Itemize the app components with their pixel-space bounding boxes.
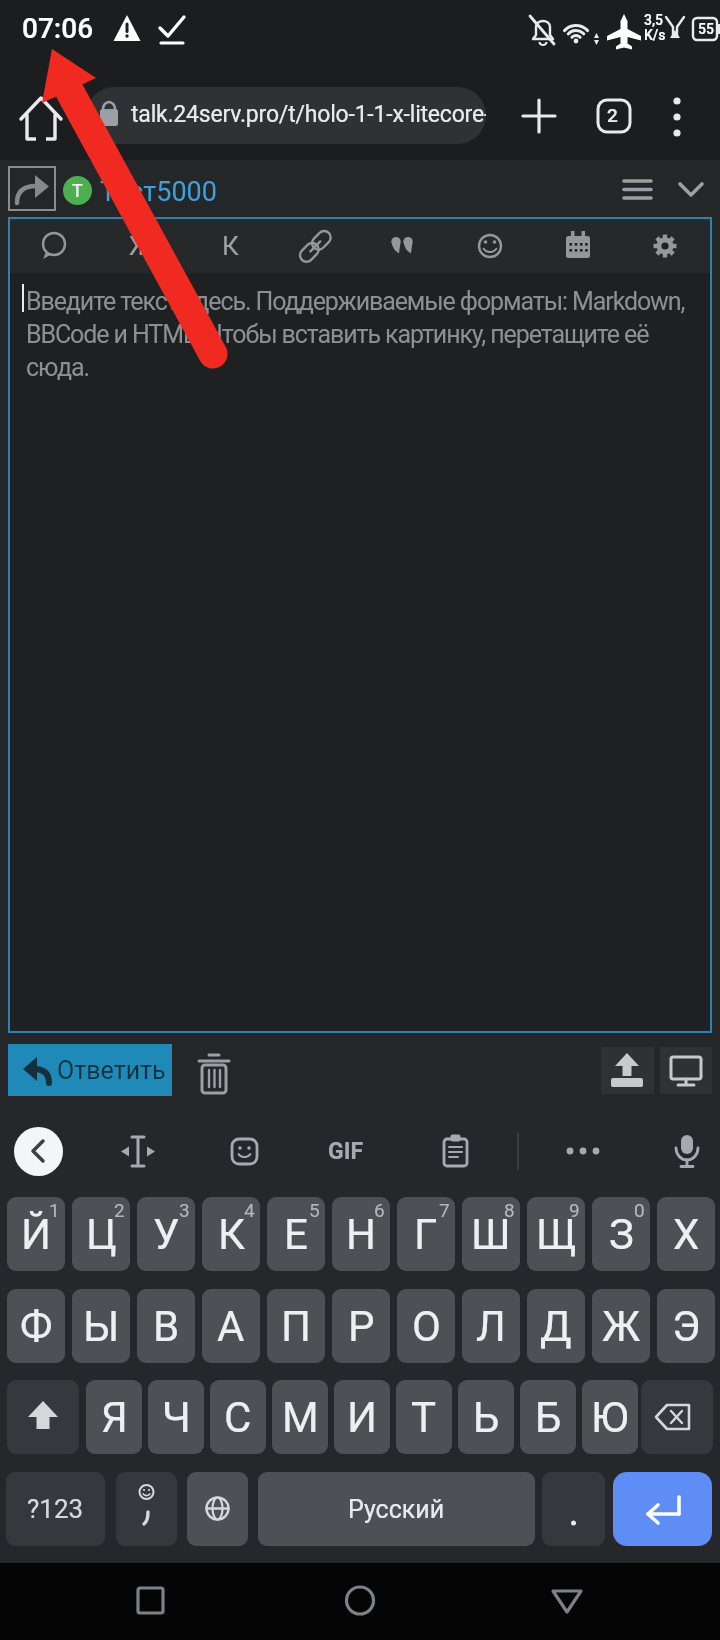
- button[interactable]: П: [267, 1289, 325, 1363]
- button[interactable]: Ш: [462, 1197, 520, 1271]
- button[interactable]: [339, 1580, 381, 1622]
- staticText: О: [412, 1302, 441, 1351]
- button[interactable]: [660, 1047, 712, 1094]
- staticText: Т: [411, 1393, 437, 1442]
- button[interactable]: [29, 222, 77, 270]
- button[interactable]: [379, 222, 427, 270]
- staticText: Ф: [20, 1302, 53, 1351]
- button[interactable]: Ь: [458, 1380, 514, 1454]
- button[interactable]: [96, 172, 216, 208]
- button[interactable]: [663, 1127, 711, 1175]
- button[interactable]: [601, 1047, 654, 1094]
- button[interactable]: Ы: [72, 1289, 130, 1363]
- button[interactable]: Г: [397, 1197, 455, 1271]
- button[interactable]: Б: [520, 1380, 576, 1454]
- staticText: Введите текст здесь. Поддерживаемые форм…: [26, 287, 685, 316]
- staticText: Ш: [471, 1210, 511, 1259]
- button[interactable]: [590, 92, 638, 140]
- button[interactable]: [542, 1472, 605, 1546]
- staticText: 55: [698, 21, 714, 37]
- staticText: Щ: [536, 1210, 577, 1259]
- button[interactable]: [196, 1052, 236, 1096]
- button[interactable]: С: [210, 1380, 266, 1454]
- button[interactable]: Щ: [527, 1197, 585, 1271]
- button[interactable]: [116, 222, 164, 270]
- button[interactable]: Д: [527, 1289, 585, 1363]
- staticText: 9: [569, 1199, 580, 1221]
- button[interactable]: [616, 172, 660, 208]
- button[interactable]: [220, 1127, 268, 1175]
- button[interactable]: А: [202, 1289, 260, 1363]
- button[interactable]: З: [592, 1197, 650, 1271]
- staticText: Х: [673, 1210, 700, 1259]
- button[interactable]: Я: [86, 1380, 142, 1454]
- button[interactable]: [559, 1127, 607, 1175]
- button[interactable]: [325, 1127, 373, 1175]
- staticText: Й: [21, 1210, 51, 1259]
- staticText: 2: [607, 104, 618, 126]
- button[interactable]: [114, 1127, 162, 1175]
- button[interactable]: Ф: [7, 1289, 65, 1363]
- button[interactable]: [546, 1580, 588, 1622]
- button[interactable]: [10, 274, 710, 1030]
- staticText: 8: [504, 1199, 515, 1221]
- button[interactable]: Э: [657, 1289, 715, 1363]
- button[interactable]: [641, 222, 689, 270]
- button[interactable]: Е: [267, 1197, 325, 1271]
- button[interactable]: Ч: [148, 1380, 204, 1454]
- staticText: В: [153, 1302, 180, 1351]
- button[interactable]: Т: [396, 1380, 452, 1454]
- staticText: Р: [348, 1302, 375, 1351]
- button[interactable]: [656, 92, 700, 140]
- button[interactable]: Х: [657, 1197, 715, 1271]
- button[interactable]: [130, 1580, 172, 1622]
- button[interactable]: [641, 1380, 713, 1454]
- button[interactable]: Ю: [582, 1380, 638, 1454]
- staticText: BBCode и HTML. Чтобы вставить картинку, …: [26, 320, 649, 349]
- button[interactable]: ?123: [6, 1472, 105, 1546]
- button[interactable]: [466, 222, 514, 270]
- button[interactable]: [431, 1127, 479, 1175]
- button[interactable]: К: [202, 1197, 260, 1271]
- button[interactable]: [613, 1472, 712, 1546]
- button[interactable]: talk.24serv.pro/t/holo-1-1-x-litecore-g: [86, 87, 486, 144]
- button[interactable]: Н: [332, 1197, 390, 1271]
- button[interactable]: Й: [7, 1197, 65, 1271]
- button[interactable]: [516, 92, 564, 140]
- staticText: Ь: [473, 1393, 500, 1442]
- staticText: Ж: [129, 231, 153, 261]
- button[interactable]: [7, 1380, 79, 1454]
- button[interactable]: Л: [462, 1289, 520, 1363]
- button[interactable]: М: [272, 1380, 328, 1454]
- button[interactable]: [187, 1472, 248, 1546]
- button[interactable]: Р: [332, 1289, 390, 1363]
- staticText: Ц: [86, 1210, 117, 1259]
- staticText: И: [347, 1393, 377, 1442]
- button[interactable]: [8, 166, 56, 211]
- staticText: 3,5: [644, 12, 663, 28]
- button[interactable]: T: [63, 176, 92, 205]
- staticText: Б: [535, 1393, 562, 1442]
- button[interactable]: [291, 222, 339, 270]
- button[interactable]: [116, 1472, 177, 1546]
- button[interactable]: Ответить: [8, 1044, 172, 1096]
- button[interactable]: В: [137, 1289, 195, 1363]
- staticText: Тест5000: [100, 176, 217, 208]
- staticText: П: [281, 1302, 311, 1351]
- staticText: М: [282, 1393, 319, 1442]
- button[interactable]: У: [137, 1197, 195, 1271]
- button[interactable]: [14, 1127, 63, 1176]
- button[interactable]: Русский: [258, 1472, 535, 1546]
- button[interactable]: [204, 222, 252, 270]
- button[interactable]: Ц: [72, 1197, 130, 1271]
- staticText: Я: [101, 1393, 128, 1442]
- button[interactable]: [672, 174, 710, 206]
- staticText: K/s: [644, 27, 666, 43]
- button[interactable]: [14, 90, 66, 144]
- staticText: Д: [540, 1302, 572, 1351]
- button[interactable]: О: [397, 1289, 455, 1363]
- button[interactable]: Ж: [592, 1289, 650, 1363]
- button[interactable]: И: [334, 1380, 390, 1454]
- button[interactable]: [553, 222, 601, 270]
- staticText: Г: [414, 1210, 438, 1259]
